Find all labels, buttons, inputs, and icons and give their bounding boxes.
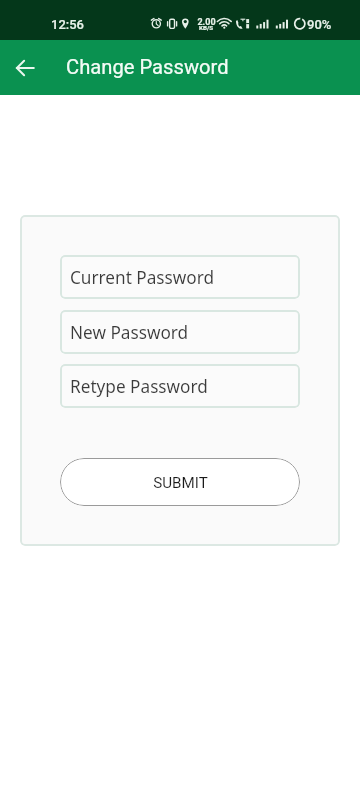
staticText: Current Password (70, 266, 215, 289)
staticText: 2.00 (197, 17, 216, 28)
staticText: Change Password (66, 55, 229, 79)
staticText: SUBMIT (153, 474, 208, 492)
button[interactable]: SUBMIT (60, 458, 300, 506)
staticText: 12:56 (51, 17, 84, 32)
staticText: 90% (307, 17, 332, 32)
button[interactable]: New Password (60, 310, 300, 354)
staticText: New Password (70, 321, 189, 344)
button[interactable]: Current Password (60, 255, 300, 299)
staticText: Retype Password (70, 375, 208, 398)
button[interactable]: Back (9, 52, 41, 84)
button[interactable]: Retype Password (60, 364, 300, 408)
staticText: KB/S (199, 24, 213, 31)
